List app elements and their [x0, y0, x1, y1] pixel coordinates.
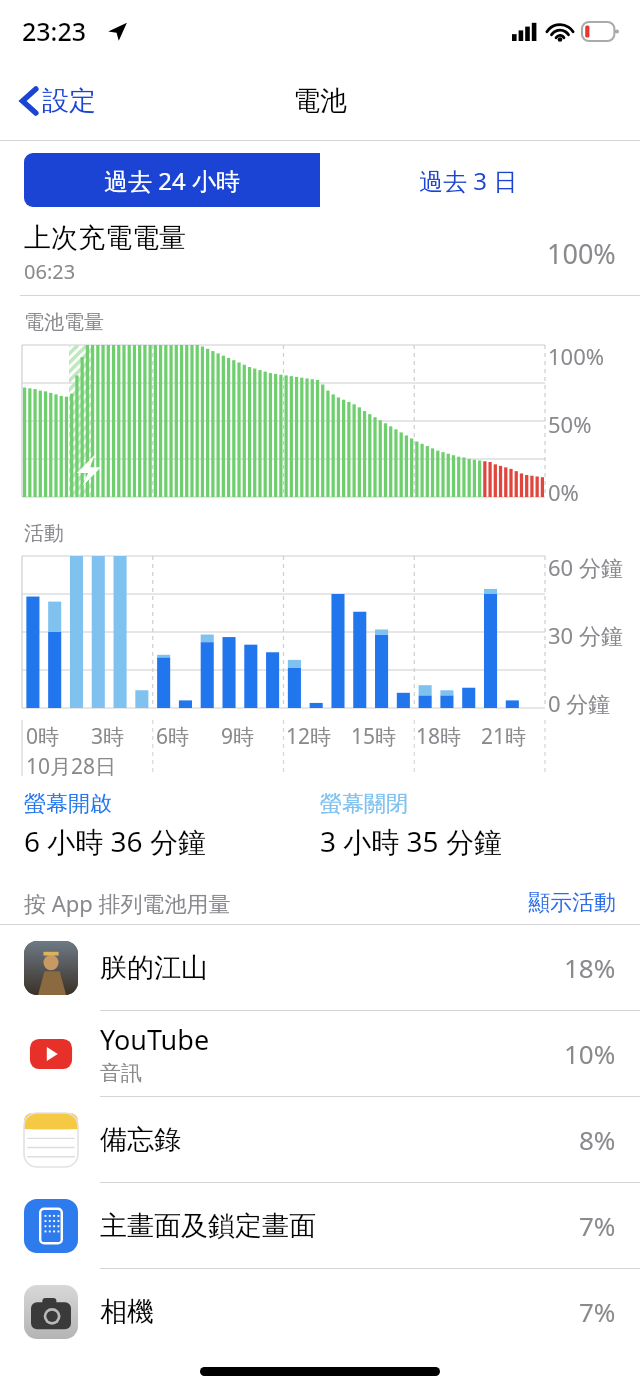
staticText: 上次充電電量	[24, 221, 186, 255]
staticText: 顯示活動	[528, 889, 616, 917]
staticText: 23:23	[22, 14, 87, 48]
staticText: 音訊	[100, 1060, 142, 1086]
button[interactable]: 相機	[0, 1269, 640, 1354]
staticText: 30 分鐘	[548, 620, 634, 650]
staticText: 7%	[579, 1294, 616, 1329]
staticText: 3 小時 35 分鐘	[320, 822, 502, 860]
staticText: 朕的江山	[100, 951, 208, 985]
staticText: 8%	[579, 1122, 616, 1157]
staticText: 10月28日	[26, 752, 117, 776]
staticText: 過去 3 日	[419, 164, 518, 197]
staticText: 過去 24 小時	[104, 164, 240, 197]
staticText: 6時	[156, 722, 190, 751]
staticText: 螢幕開啟	[24, 790, 112, 818]
staticText: 50%	[548, 409, 634, 439]
staticText: 電池電量	[24, 310, 104, 335]
button[interactable]: 過去 24 小時	[24, 153, 320, 207]
button[interactable]: 顯示活動	[528, 889, 616, 917]
staticText: 0 分鐘	[548, 688, 634, 718]
staticText: 活動	[24, 521, 64, 546]
button[interactable]: 設定	[14, 78, 102, 124]
staticText: 21時	[481, 722, 527, 751]
staticText: 0%	[548, 477, 634, 507]
staticText: 6 小時 36 分鐘	[24, 822, 206, 860]
staticText: YouTube	[100, 1021, 210, 1058]
staticText: 10%	[564, 1036, 616, 1071]
staticText: 18時	[416, 722, 462, 751]
staticText: 18%	[564, 950, 616, 985]
staticText: 12時	[286, 722, 332, 751]
staticText: 相機	[100, 1295, 154, 1329]
staticText: 3時	[91, 722, 125, 751]
staticText: 主畫面及鎖定畫面	[100, 1209, 316, 1243]
button[interactable]: 朕的江山	[0, 925, 640, 1010]
staticText: 100%	[547, 235, 616, 272]
button[interactable]: 備忘錄	[0, 1097, 640, 1182]
staticText: 螢幕關閉	[320, 790, 408, 818]
staticText: 60 分鐘	[548, 552, 634, 582]
staticText: 設定	[42, 84, 96, 118]
staticText: 100%	[548, 341, 634, 371]
staticText: 9時	[221, 722, 255, 751]
button[interactable]: YouTube	[0, 1011, 640, 1096]
staticText: 按 App 排列電池用量	[24, 888, 528, 918]
staticText: 15時	[351, 722, 397, 751]
staticText: 0時	[26, 722, 60, 751]
staticText: 備忘錄	[100, 1123, 181, 1157]
staticText: 06:23	[24, 258, 76, 285]
button[interactable]: 過去 3 日	[320, 153, 616, 207]
staticText: 電池	[293, 84, 347, 118]
staticText: 7%	[579, 1208, 616, 1243]
button[interactable]: 主畫面及鎖定畫面	[0, 1183, 640, 1268]
